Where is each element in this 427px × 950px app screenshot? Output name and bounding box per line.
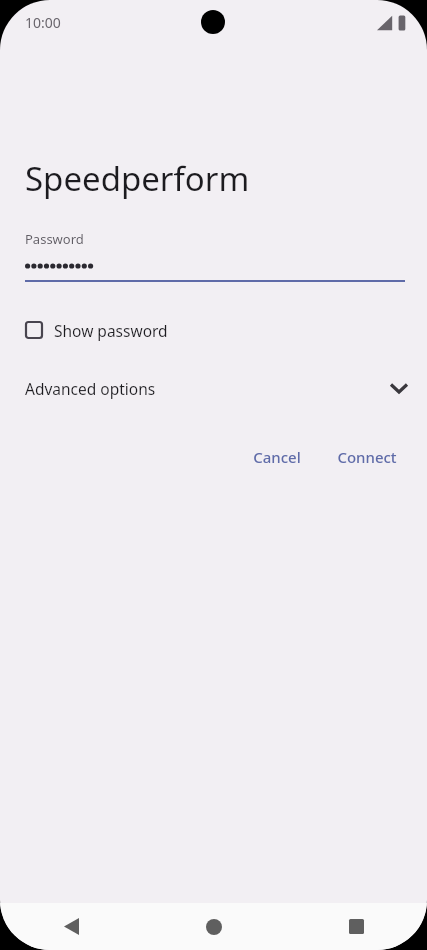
button[interactable]: Show password xyxy=(0,311,427,349)
button[interactable]: Connect xyxy=(325,439,409,475)
staticText: Connect xyxy=(337,447,397,467)
staticText: 10:00 xyxy=(25,13,61,32)
staticText: Cancel xyxy=(253,447,301,467)
button[interactable]: Advanced options xyxy=(0,369,427,407)
button[interactable]: Recent apps xyxy=(285,903,427,950)
button[interactable]: Home xyxy=(143,903,285,950)
button[interactable]: Cancel xyxy=(241,439,313,475)
staticText: Advanced options xyxy=(25,378,156,399)
button[interactable]: Back xyxy=(0,903,143,950)
other: Expand advanced options xyxy=(391,383,407,393)
button[interactable] xyxy=(25,248,405,293)
staticText: Show password xyxy=(54,320,168,341)
staticText: Speedperform xyxy=(25,156,250,201)
staticText: Password xyxy=(25,230,84,248)
